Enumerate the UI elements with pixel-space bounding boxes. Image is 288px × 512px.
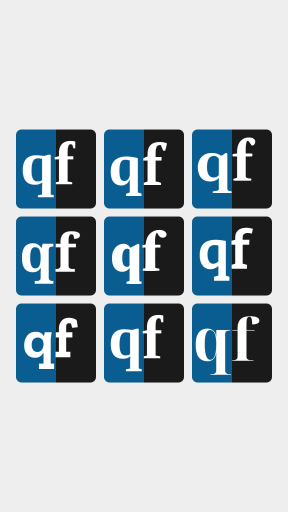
staticText: qf	[20, 129, 74, 197]
staticText: qf	[195, 128, 253, 200]
staticText: qf	[193, 298, 255, 378]
staticText: qf	[198, 219, 250, 283]
staticText: qf	[109, 127, 163, 201]
staticText: qf	[23, 304, 73, 372]
staticText: qf	[19, 215, 76, 287]
staticText: qf	[108, 303, 162, 371]
staticText: qf	[110, 213, 161, 289]
